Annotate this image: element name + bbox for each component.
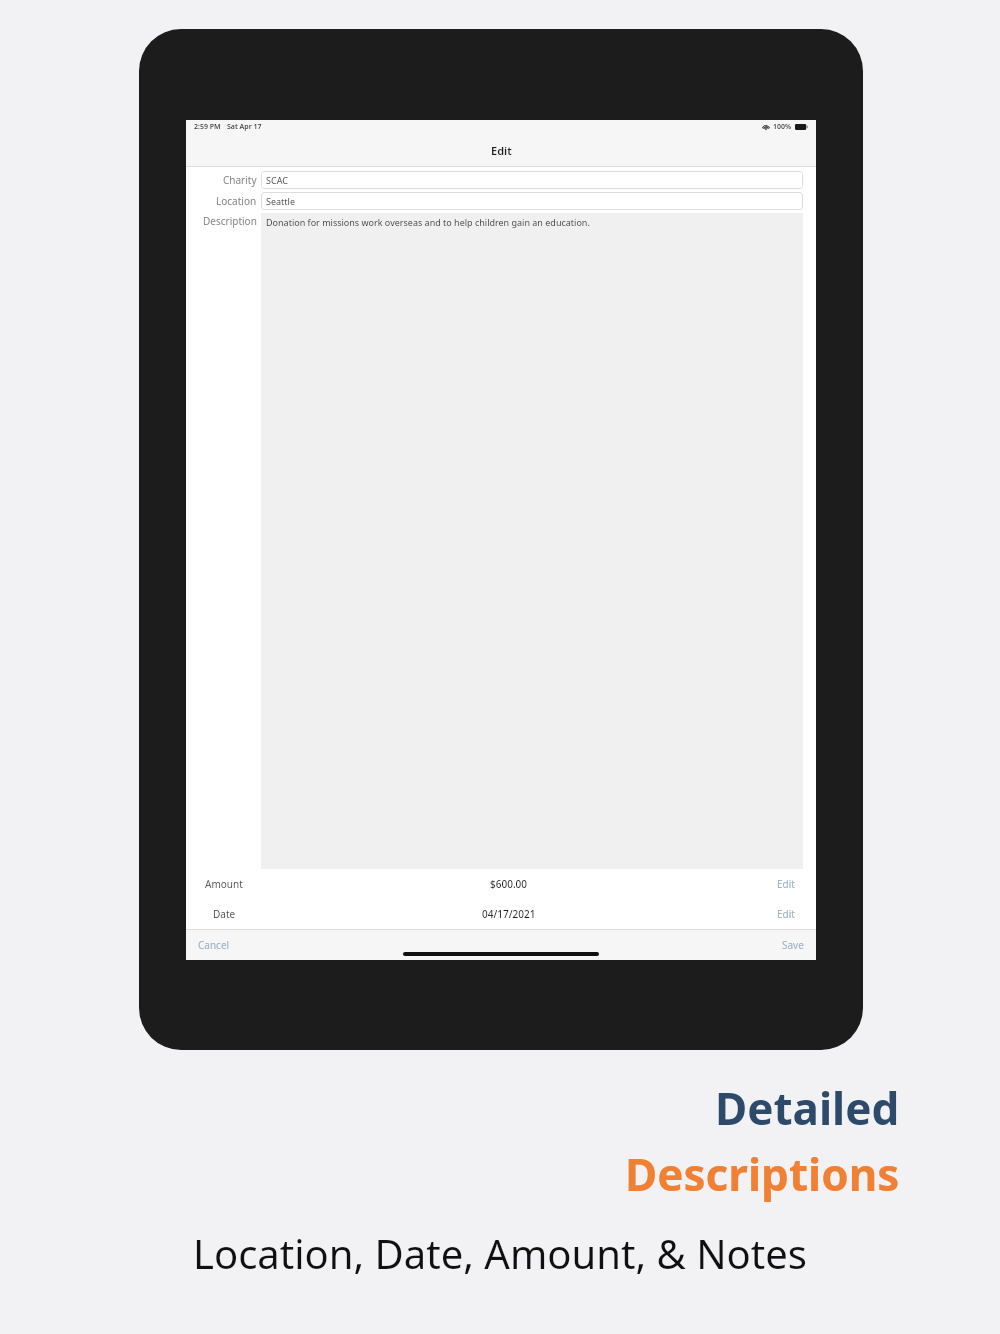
staticText: Save bbox=[782, 938, 804, 952]
staticText: Edit bbox=[777, 907, 795, 921]
staticText: $600.00 bbox=[490, 877, 528, 891]
staticText: 100% bbox=[773, 122, 792, 132]
button[interactable]: Edit bbox=[756, 899, 816, 929]
button[interactable]: Donation for missions work overseas and … bbox=[261, 213, 803, 869]
staticText: Location, Date, Amount, & Notes bbox=[193, 1226, 807, 1280]
staticText: SCAC bbox=[266, 174, 288, 186]
staticText: 2:59 PM bbox=[194, 122, 221, 132]
staticText: Sat Apr 17 bbox=[227, 122, 262, 132]
staticText: Amount bbox=[205, 877, 243, 891]
staticText: Edit bbox=[777, 877, 795, 891]
button[interactable]: Cancel bbox=[192, 934, 236, 956]
staticText: 04/17/2021 bbox=[482, 907, 536, 921]
button[interactable]: Charity bbox=[186, 171, 816, 189]
button[interactable]: Amount bbox=[186, 869, 816, 899]
button[interactable]: Edit bbox=[756, 869, 816, 899]
staticText: Location bbox=[216, 194, 257, 208]
button[interactable]: Save bbox=[776, 934, 810, 956]
button[interactable]: Location bbox=[186, 192, 816, 210]
staticText: Date bbox=[213, 907, 236, 921]
staticText: Detailed bbox=[715, 1078, 900, 1138]
other: Home indicator bbox=[403, 952, 599, 956]
staticText: Charity bbox=[223, 173, 257, 187]
staticText: Descriptions bbox=[625, 1144, 900, 1204]
staticText: Cancel bbox=[198, 938, 230, 952]
button[interactable]: Date bbox=[186, 899, 816, 929]
staticText: Description bbox=[203, 214, 257, 228]
staticText: Edit bbox=[491, 143, 512, 158]
staticText: Seattle bbox=[266, 195, 295, 207]
staticText: Donation for missions work overseas and … bbox=[266, 216, 590, 228]
